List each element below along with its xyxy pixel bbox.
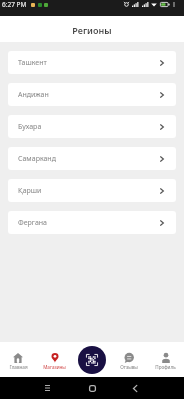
staticText: Профиль [155, 364, 176, 370]
staticText: Ташкент [18, 58, 47, 68]
button[interactable]: Scan QR code [78, 346, 106, 374]
staticText: Главная [9, 364, 28, 370]
button[interactable]: Отзывы [110, 342, 147, 377]
button[interactable]: Андижан [8, 83, 176, 106]
button[interactable]: Главная [0, 342, 36, 377]
staticText: Отзывы [120, 364, 138, 370]
button[interactable]: Фергана [8, 211, 176, 234]
staticText: Фергана [18, 218, 47, 228]
button[interactable]: Ташкент [8, 51, 176, 74]
button[interactable]: Профиль [147, 342, 184, 377]
button[interactable]: Recent apps [38, 379, 56, 397]
button[interactable]: Back [126, 379, 144, 397]
staticText: Магазины [43, 364, 66, 370]
staticText: Самарканд [18, 154, 56, 164]
button[interactable]: Самарканд [8, 147, 176, 170]
staticText: Андижан [18, 90, 49, 100]
button[interactable]: Қарши [8, 179, 176, 202]
button[interactable]: Магазины [36, 342, 73, 377]
staticText: 6:27 PM [2, 0, 27, 9]
staticText: Қарши [18, 186, 42, 196]
staticText: Регионы [72, 24, 112, 36]
button[interactable]: Бухара [8, 115, 176, 138]
staticText: Бухара [18, 122, 42, 132]
button[interactable]: Home [83, 379, 101, 397]
